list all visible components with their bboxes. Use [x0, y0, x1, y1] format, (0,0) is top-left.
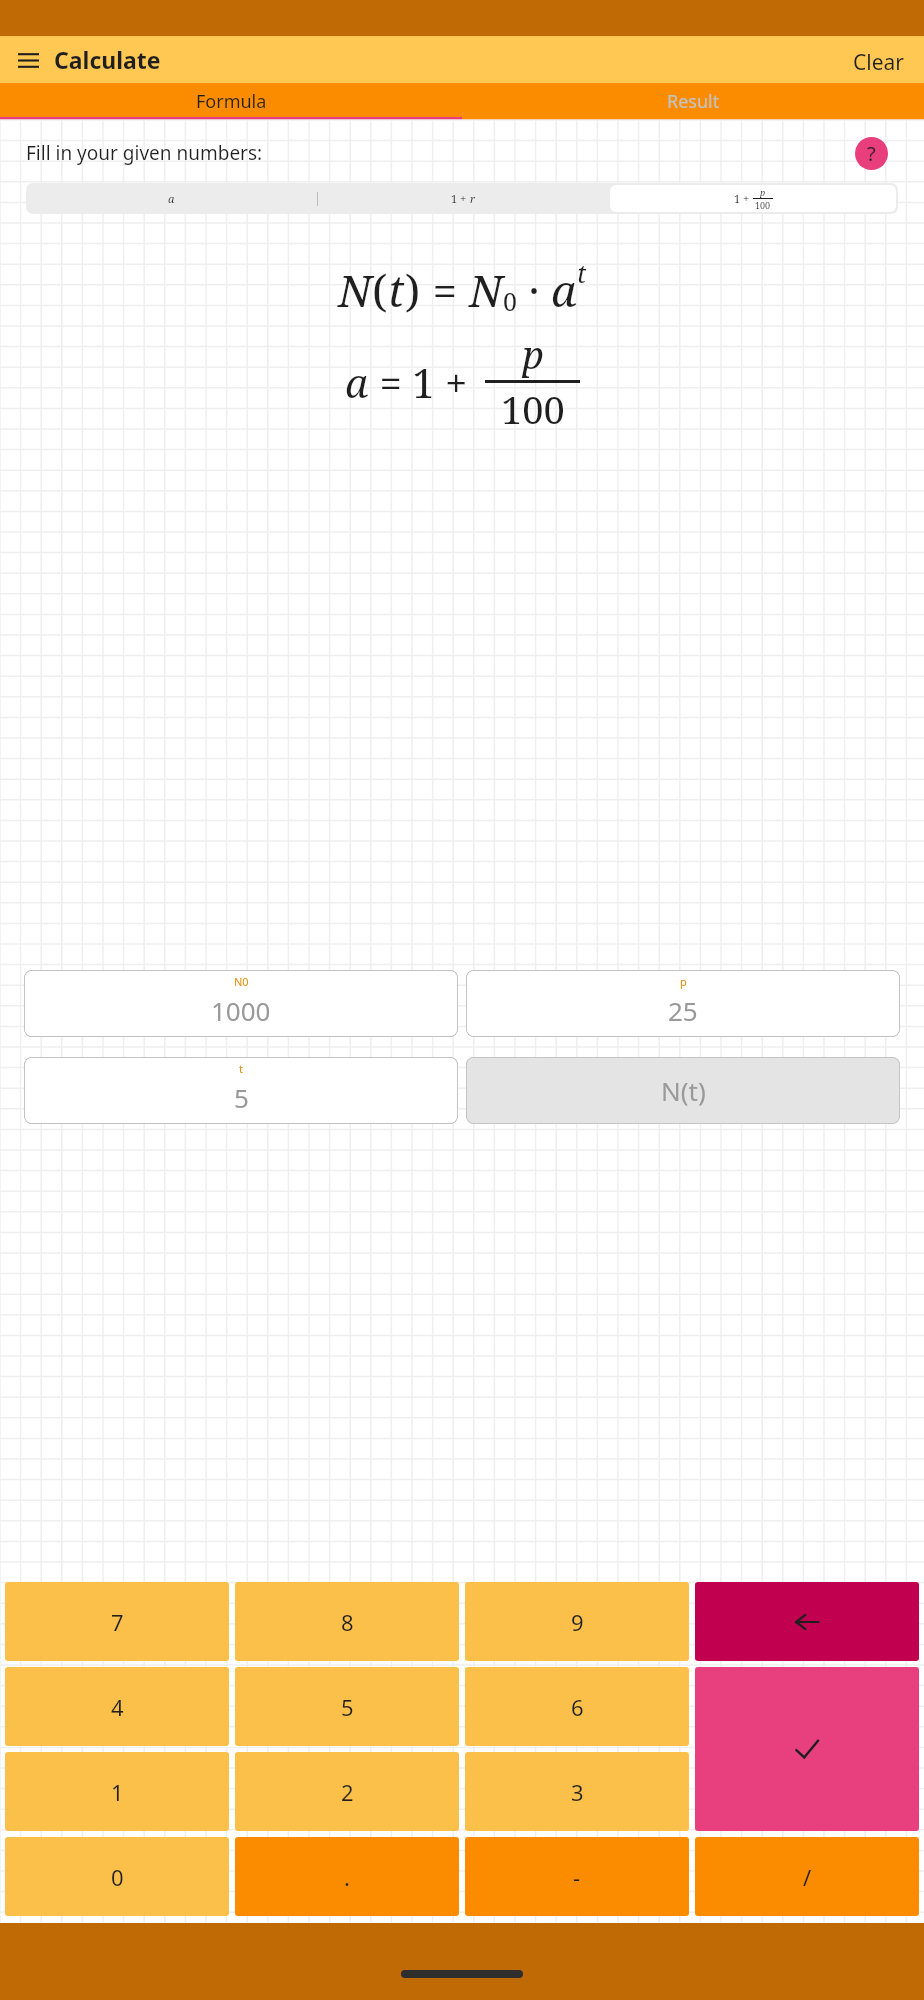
staticText: 5 — [234, 1080, 249, 1115]
staticText: 1000 — [211, 993, 271, 1028]
staticText: a — [345, 355, 369, 409]
staticText: a — [551, 260, 577, 320]
staticText: 0 — [503, 284, 517, 318]
staticText: / — [803, 1862, 812, 1892]
staticText: p — [522, 328, 544, 380]
button[interactable]: Formula — [0, 83, 462, 120]
button[interactable]: t — [24, 1057, 458, 1124]
staticText: t — [239, 1061, 243, 1076]
staticText: a — [168, 191, 175, 206]
button[interactable]: Open navigation menu — [8, 40, 48, 80]
staticText: ) — [405, 260, 421, 320]
button[interactable]: Confirm — [695, 1667, 919, 1831]
button[interactable]: 0 — [5, 1837, 229, 1916]
button[interactable]: N0 — [24, 970, 458, 1037]
button[interactable]: Backspace — [695, 1582, 919, 1661]
staticText: Calculate — [54, 44, 161, 75]
staticText: Formula — [196, 89, 267, 114]
button[interactable]: 1 — [5, 1752, 229, 1831]
staticText: 8 — [341, 1607, 354, 1637]
staticText: 100 — [501, 383, 565, 435]
staticText: N — [469, 260, 503, 320]
staticText: 1 + — [734, 191, 753, 206]
staticText: ( — [372, 260, 388, 320]
staticText: N0 — [234, 974, 249, 989]
staticText: - — [573, 1862, 581, 1892]
button[interactable]: 5 — [235, 1667, 459, 1746]
staticText: 1 — [111, 1777, 124, 1807]
staticText: 7 — [111, 1607, 124, 1637]
button[interactable]: 9 — [465, 1582, 689, 1661]
staticText: 9 — [571, 1607, 584, 1637]
button[interactable]: a — [26, 183, 317, 214]
staticText: ? — [867, 140, 876, 167]
staticText: · — [517, 260, 551, 320]
staticText: p — [760, 186, 766, 198]
staticText: 3 — [571, 1777, 584, 1807]
staticText: Clear — [853, 48, 904, 71]
staticText: N — [338, 260, 372, 320]
staticText: t — [577, 256, 587, 290]
button[interactable]: . — [235, 1837, 459, 1916]
button[interactable]: p — [466, 970, 900, 1037]
staticText: 5 — [341, 1692, 354, 1722]
staticText: 100 — [755, 199, 771, 211]
button[interactable]: 3 — [465, 1752, 689, 1831]
button[interactable]: 8 — [235, 1582, 459, 1661]
staticText: Fill in your given numbers: — [26, 140, 263, 166]
button[interactable]: 2 — [235, 1752, 459, 1831]
button[interactable]: 1 + — [318, 183, 608, 214]
button[interactable]: / — [695, 1837, 919, 1916]
staticText: p — [680, 974, 687, 989]
button[interactable]: N(t) — [466, 1057, 900, 1124]
staticText: 1 + — [451, 191, 470, 206]
button[interactable]: 6 — [465, 1667, 689, 1746]
button[interactable]: 1 + — [610, 185, 896, 212]
staticText: 6 — [571, 1692, 584, 1722]
staticText: = — [421, 260, 469, 320]
button[interactable]: 4 — [5, 1667, 229, 1746]
button[interactable]: Result — [462, 83, 924, 120]
button[interactable]: Help — [855, 137, 888, 170]
staticText: 0 — [111, 1862, 124, 1892]
staticText: Result — [667, 89, 720, 114]
staticText: 2 — [341, 1777, 354, 1807]
staticText: 25 — [668, 993, 698, 1028]
button[interactable]: - — [465, 1837, 689, 1916]
staticText: N(t) — [661, 1073, 706, 1108]
staticText: t — [388, 260, 405, 320]
button[interactable]: Clear — [833, 36, 924, 83]
staticText: 4 — [111, 1692, 124, 1722]
button[interactable]: 7 — [5, 1582, 229, 1661]
staticText: r — [470, 191, 476, 206]
staticText: . — [344, 1862, 350, 1892]
staticText: = 1 + — [369, 355, 478, 409]
